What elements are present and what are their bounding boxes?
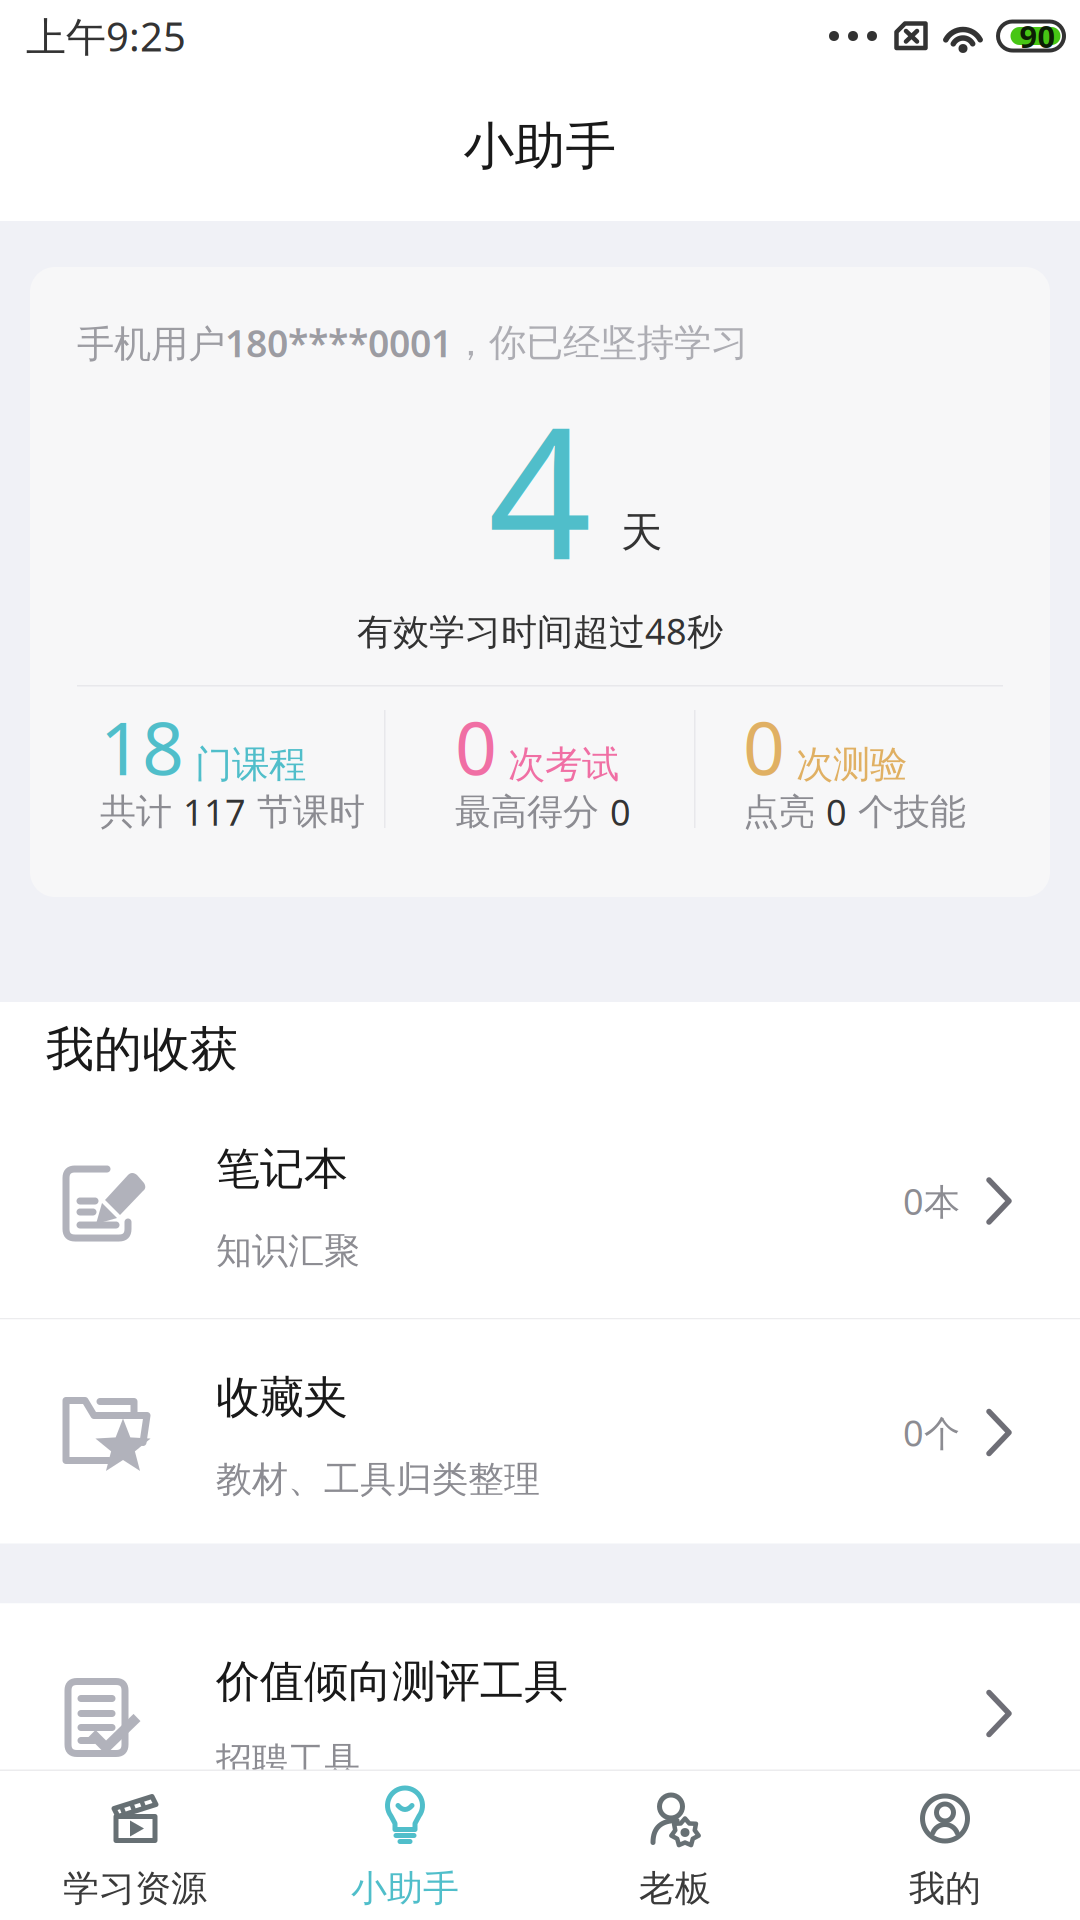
staticText: 学习资源	[63, 1866, 207, 1911]
staticText: 0本	[903, 1177, 960, 1225]
staticText: 手机用户180****0001	[77, 318, 452, 368]
button[interactable]: 老板	[540, 1771, 810, 1920]
staticText: 我的	[909, 1866, 981, 1911]
staticText: 0	[826, 788, 847, 836]
staticText: 4	[488, 368, 592, 609]
staticText: 0	[610, 788, 631, 836]
staticText: 老板	[639, 1866, 711, 1911]
staticText: ，你已经坚持学习	[452, 320, 748, 366]
staticText: 笔记本	[216, 1142, 348, 1196]
staticText: 90	[1019, 16, 1055, 56]
staticText: 上午9:25	[26, 9, 186, 62]
staticText: 招聘工具	[216, 1738, 360, 1783]
staticText: 共计	[100, 790, 183, 834]
button[interactable]: 收藏夹	[0, 1319, 1080, 1543]
staticText: 个技能	[847, 790, 966, 834]
staticText: 知识汇聚	[216, 1229, 360, 1273]
staticText: 次考试	[497, 741, 619, 787]
staticText: 收藏夹	[216, 1370, 348, 1424]
staticText: 117	[183, 788, 246, 836]
button[interactable]: 我的	[810, 1771, 1080, 1920]
staticText: 节课时	[246, 790, 365, 834]
button[interactable]: 学习资源	[0, 1771, 270, 1920]
staticText: 点亮	[743, 790, 826, 834]
staticText: 0	[743, 698, 785, 795]
staticText: 我的收获	[46, 1020, 238, 1079]
staticText: 门课程	[184, 741, 306, 787]
button[interactable]: 笔记本	[0, 1090, 1080, 1318]
staticText: 0	[455, 698, 497, 795]
button[interactable]: 价值倾向测评工具	[0, 1603, 1080, 1769]
staticText: 18	[100, 698, 184, 795]
staticText: 天	[621, 507, 662, 558]
staticText: 有效学习时间超过48秒	[357, 607, 723, 655]
staticText: 教材、工具归类整理	[216, 1457, 540, 1502]
button[interactable]: 小助手	[270, 1771, 540, 1920]
staticText: 小助手	[463, 115, 616, 178]
staticText: 0个	[903, 1409, 960, 1456]
staticText: 次测验	[785, 741, 907, 787]
staticText: 小助手	[351, 1866, 459, 1911]
staticText: 最高得分	[455, 790, 610, 834]
staticText: 价值倾向测评工具	[216, 1654, 568, 1708]
